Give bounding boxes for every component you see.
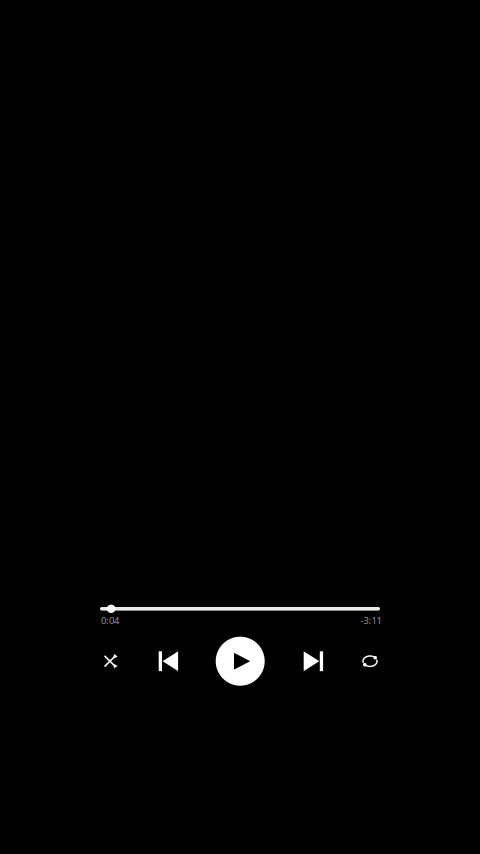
button[interactable]: Repeat (350, 641, 390, 681)
button[interactable]: Play (216, 637, 265, 686)
button[interactable]: Previous track (147, 640, 189, 682)
staticText: -3:11 (360, 614, 381, 627)
button[interactable]: Next track (292, 640, 334, 682)
button[interactable]: Shuffle (92, 641, 132, 681)
staticText: 0:04 (101, 614, 119, 627)
